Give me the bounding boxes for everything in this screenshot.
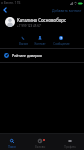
staticText: Сообщение bbox=[53, 42, 70, 46]
button[interactable]: Профиль bbox=[61, 134, 79, 150]
button[interactable]: Рейтинг доверия bbox=[0, 49, 84, 62]
staticText: Рейтинг доверия bbox=[12, 53, 42, 58]
button[interactable]: Вызовы bbox=[31, 134, 49, 150]
button[interactable]: Вызов bbox=[14, 33, 32, 46]
staticText: Вызовы bbox=[35, 145, 46, 149]
staticText: +7 999 123 45 67 bbox=[17, 24, 41, 28]
button[interactable]: Back bbox=[0, 5, 10, 15]
button[interactable]: Поиск bbox=[3, 134, 21, 150]
button[interactable]: Добавить контакт bbox=[50, 6, 84, 15]
staticText: Беспл. 1 ГБ bbox=[4, 1, 21, 5]
staticText: Профиль bbox=[64, 145, 76, 149]
button[interactable]: Сообщение bbox=[49, 33, 73, 46]
staticText: Поиск bbox=[8, 145, 16, 149]
staticText: Каталина Сосновоборс bbox=[17, 17, 67, 23]
staticText: Вызов bbox=[19, 42, 28, 46]
staticText: Контакт bbox=[34, 42, 46, 46]
button[interactable]: Контакт bbox=[31, 33, 49, 46]
